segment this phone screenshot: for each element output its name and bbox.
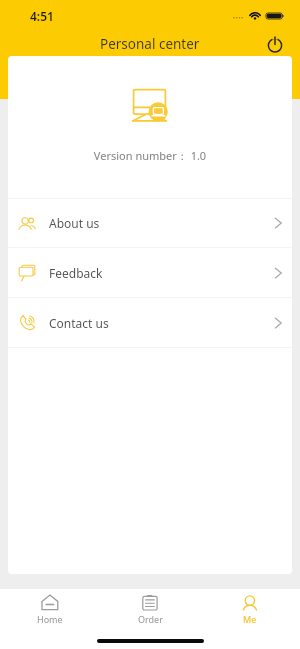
staticText: Home: [37, 613, 63, 625]
staticText: Order: [138, 613, 163, 625]
button[interactable]: Power off: [263, 33, 287, 57]
staticText: 4:51: [30, 8, 54, 24]
staticText: Feedback: [49, 265, 103, 281]
staticText: About us: [49, 215, 100, 231]
button[interactable]: Feedback: [8, 248, 292, 297]
button[interactable]: Me: [200, 589, 300, 633]
staticText: Version number： 1.0: [8, 148, 292, 163]
button[interactable]: Contact us: [8, 298, 292, 347]
staticText: Personal center: [100, 35, 200, 53]
button[interactable]: Home: [0, 589, 100, 633]
button[interactable]: Order: [100, 589, 200, 633]
staticText: Contact us: [49, 315, 109, 331]
button[interactable]: About us: [8, 199, 292, 247]
staticText: Me: [243, 613, 257, 625]
